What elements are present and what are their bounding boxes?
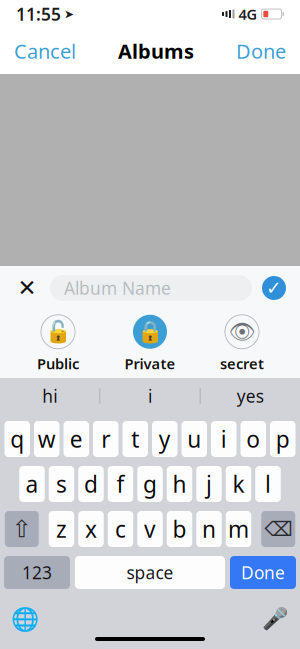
button[interactable]: Delete	[261, 511, 295, 547]
staticText: j	[206, 469, 212, 499]
staticText: ⌫	[264, 518, 292, 540]
staticText: d	[84, 469, 98, 499]
button[interactable]: r	[93, 421, 118, 457]
button[interactable]: k	[226, 466, 251, 502]
staticText: e	[70, 424, 83, 454]
button[interactable]: Next keyboard	[8, 604, 42, 634]
button[interactable]: hi	[0, 378, 99, 414]
staticText: s	[56, 469, 67, 499]
staticText: Public	[37, 354, 79, 373]
staticText: Album Name	[64, 276, 171, 299]
button[interactable]: v	[137, 511, 163, 547]
button[interactable]: Cancel	[0, 28, 90, 74]
staticText: l	[265, 469, 271, 499]
button[interactable]: 123	[4, 556, 70, 589]
staticText: v	[144, 514, 156, 544]
staticText: ⇧	[12, 515, 32, 543]
staticText: x	[85, 514, 97, 544]
staticText: 🎤	[261, 607, 288, 631]
staticText: 👁	[228, 320, 255, 344]
staticText: Private	[124, 354, 175, 373]
staticText: g	[143, 469, 157, 499]
button[interactable]: y	[152, 421, 177, 457]
staticText: b	[172, 514, 186, 544]
staticText: 123	[22, 561, 52, 584]
button[interactable]: t	[122, 421, 148, 457]
button[interactable]: x	[78, 511, 104, 547]
staticText: n	[202, 514, 216, 544]
button[interactable]: 🔓	[12, 315, 104, 373]
button[interactable]: Clear	[14, 275, 40, 301]
button[interactable]: o	[240, 421, 266, 457]
staticText: Done	[241, 561, 285, 584]
button[interactable]: q	[4, 421, 30, 457]
button[interactable]: p	[270, 421, 295, 457]
staticText: y	[159, 424, 171, 454]
button[interactable]: e	[63, 421, 89, 457]
button[interactable]: z	[49, 511, 74, 547]
staticText: secret	[220, 354, 264, 373]
staticText: 🌐	[11, 606, 39, 632]
staticText: Done	[236, 38, 286, 64]
button[interactable]: Shift	[5, 511, 39, 547]
button[interactable]: 🔒	[104, 315, 196, 373]
staticText: 4G	[238, 4, 257, 24]
button[interactable]: i	[100, 378, 200, 414]
staticText: w	[38, 424, 56, 454]
staticText: h	[172, 469, 186, 499]
button[interactable]: f	[108, 466, 133, 502]
staticText: z	[56, 514, 67, 544]
staticText: m	[228, 514, 249, 544]
staticText: f	[116, 469, 124, 499]
staticText: k	[232, 469, 244, 499]
staticText: q	[10, 424, 24, 454]
button[interactable]: i	[211, 421, 236, 457]
button[interactable]: Done	[222, 28, 300, 74]
staticText: ✓	[266, 277, 282, 299]
staticText: 🔒	[136, 320, 163, 344]
button[interactable]: a	[19, 466, 45, 502]
button[interactable]: h	[167, 466, 192, 502]
staticText: p	[276, 424, 290, 454]
button[interactable]: j	[196, 466, 222, 502]
staticText: space	[126, 561, 173, 584]
staticText: i	[221, 424, 227, 454]
staticText: o	[246, 424, 260, 454]
staticText: a	[25, 469, 38, 499]
staticText: c	[115, 514, 126, 544]
staticText: hi	[42, 384, 57, 407]
staticText: 11:55	[16, 2, 61, 25]
button[interactable]: m	[226, 511, 251, 547]
button[interactable]: w	[34, 421, 59, 457]
staticText: u	[187, 424, 201, 454]
staticText: yes	[237, 384, 264, 407]
button[interactable]: yes	[201, 378, 300, 414]
staticText: 🔓	[44, 320, 71, 344]
button[interactable]: c	[108, 511, 133, 547]
staticText: Albums	[118, 38, 194, 64]
button[interactable]: g	[137, 466, 163, 502]
staticText: t	[131, 424, 139, 454]
staticText: ✕	[17, 275, 36, 301]
button[interactable]: u	[181, 421, 207, 457]
staticText: Cancel	[14, 38, 76, 64]
button[interactable]: space	[75, 556, 225, 589]
button[interactable]: Done	[230, 556, 296, 589]
button[interactable]: l	[255, 466, 281, 502]
staticText: ➤	[64, 7, 74, 21]
button[interactable]: s	[49, 466, 74, 502]
button[interactable]: n	[196, 511, 222, 547]
staticText: r	[101, 424, 110, 454]
button[interactable]: b	[167, 511, 192, 547]
staticText: i	[148, 384, 152, 407]
button[interactable]: Confirm album name	[262, 276, 286, 300]
button[interactable]: 👁	[196, 315, 288, 373]
button[interactable]: d	[78, 466, 104, 502]
button[interactable]: Dictation	[258, 604, 292, 634]
